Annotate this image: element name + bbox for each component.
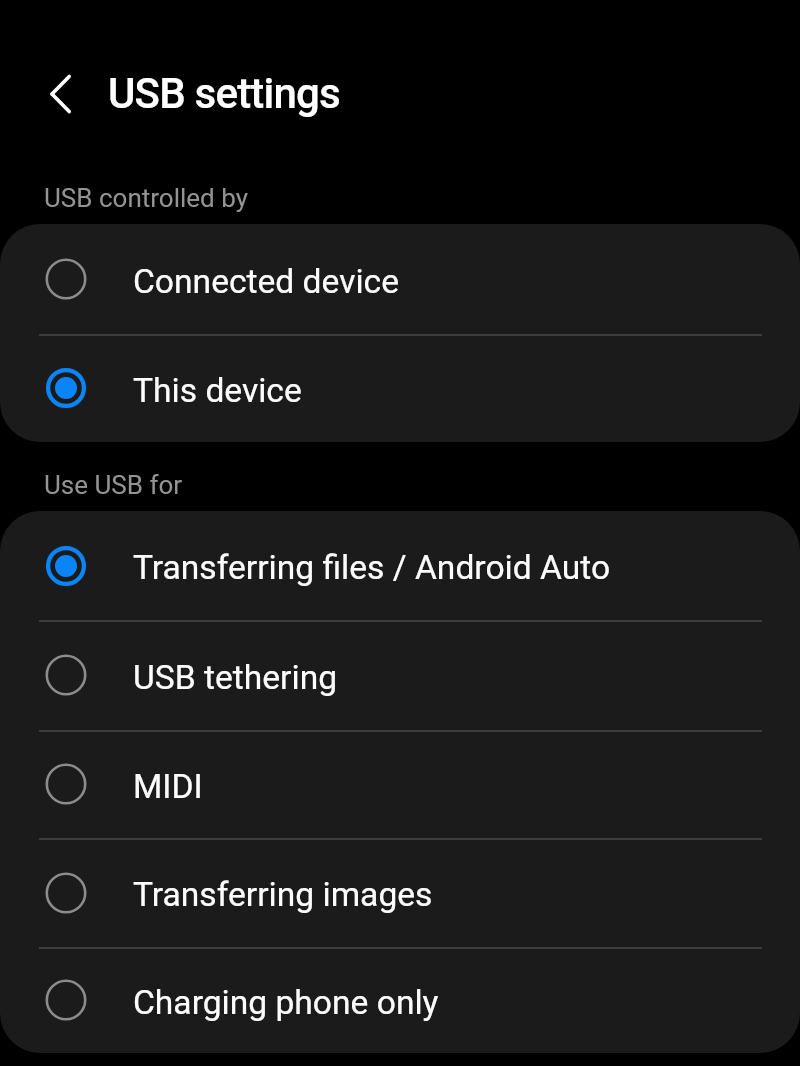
staticText: Charging phone only	[133, 983, 439, 1022]
button[interactable]: Charging phone only	[0, 947, 800, 1053]
button[interactable]: Connected device	[0, 224, 800, 334]
button[interactable]: This device	[0, 334, 800, 442]
button[interactable]: Transferring files / Android Auto	[0, 511, 800, 620]
button[interactable]: MIDI	[0, 730, 800, 838]
button[interactable]: Navigate up	[46, 73, 88, 115]
staticText: USB settings	[108, 69, 340, 118]
staticText: Transferring images	[133, 875, 433, 914]
staticText: USB tethering	[133, 658, 338, 697]
button[interactable]: Transferring images	[0, 838, 800, 947]
staticText: This device	[133, 371, 302, 410]
staticText: Use USB for	[44, 470, 183, 500]
staticText: Transferring files / Android Auto	[133, 548, 611, 587]
staticText: Connected device	[133, 262, 399, 301]
staticText: USB controlled by	[44, 183, 248, 213]
button[interactable]: USB tethering	[0, 620, 800, 730]
staticText: MIDI	[133, 767, 203, 806]
